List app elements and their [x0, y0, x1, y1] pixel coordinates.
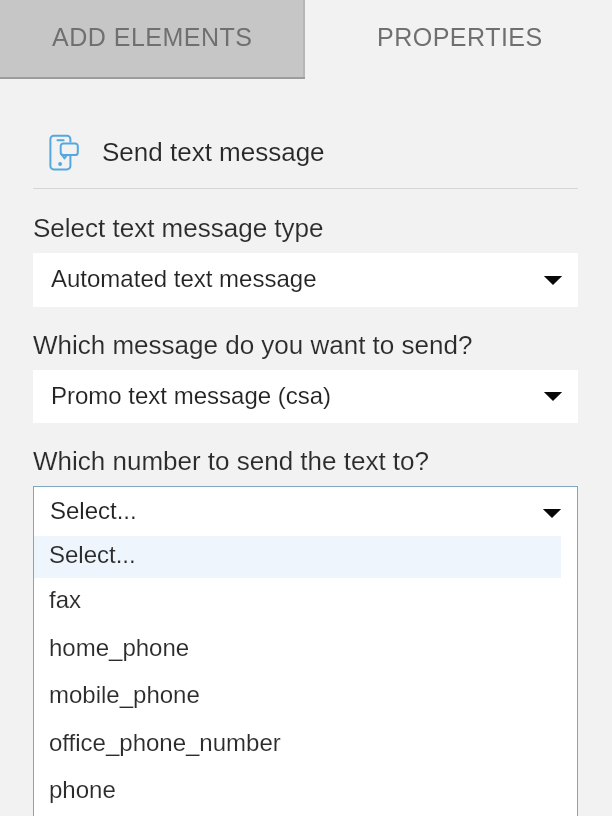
staticText: fax: [49, 586, 82, 613]
staticText: PROPERTIES: [377, 23, 543, 51]
staticText: ADD ELEMENTS: [52, 23, 253, 51]
staticText: Select...: [50, 497, 137, 524]
staticText: Select text message type: [33, 213, 324, 242]
button[interactable]: office_phone_number: [34, 720, 577, 767]
staticText: Promo text message (csa): [51, 382, 332, 409]
button[interactable]: Automated text message: [33, 253, 578, 307]
staticText: Select...: [49, 541, 136, 568]
button[interactable]: PROPERTIES: [305, 0, 612, 79]
staticText: Automated text message: [51, 265, 317, 292]
button[interactable]: Select...: [34, 487, 577, 536]
staticText: mobile_phone: [49, 681, 200, 708]
staticText: Which number to send the text to?: [33, 446, 429, 475]
staticText: Send text message: [102, 137, 325, 166]
staticText: home_phone: [49, 634, 190, 661]
button[interactable]: ADD ELEMENTS: [0, 0, 305, 79]
button[interactable]: Send text message: [46, 132, 305, 174]
button[interactable]: fax: [34, 577, 577, 624]
staticText: office_phone_number: [49, 729, 281, 756]
button[interactable]: Promo text message (csa): [33, 370, 578, 423]
staticText: Which message do you want to send?: [33, 330, 473, 359]
button[interactable]: home_phone: [34, 625, 577, 672]
staticText: phone: [49, 776, 116, 803]
button[interactable]: phone: [34, 767, 577, 814]
button[interactable]: mobile_phone: [34, 672, 577, 719]
button[interactable]: Select...: [34, 536, 561, 578]
